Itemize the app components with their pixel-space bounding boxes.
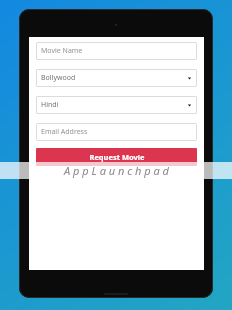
staticText: Movie Name <box>41 46 192 56</box>
button[interactable]: Movie Name <box>36 42 197 60</box>
button[interactable]: Email Address <box>36 123 197 141</box>
button[interactable]: Bollywood <box>36 69 197 87</box>
staticText: Hindi <box>41 100 187 110</box>
staticText: Request Movie <box>89 152 145 162</box>
staticText: Email Address <box>41 127 192 137</box>
staticText: A p p L a u n c h p a d <box>64 163 169 178</box>
button[interactable]: Request Movie <box>36 148 197 166</box>
staticText: Bollywood <box>41 73 187 83</box>
button[interactable]: Hindi <box>36 96 197 114</box>
